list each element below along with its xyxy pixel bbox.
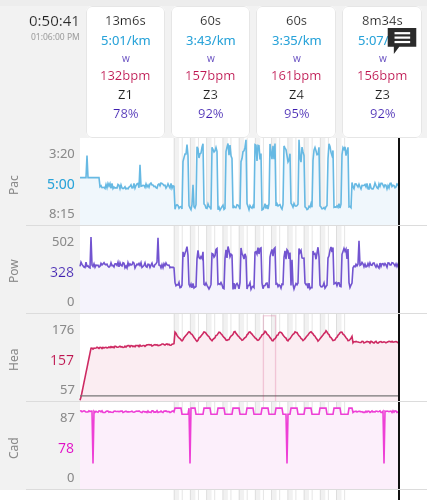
staticText: 01:06:00 PM [31, 31, 80, 43]
staticText: 5:00 [47, 174, 75, 193]
button[interactable] [80, 314, 427, 402]
staticText: Z4 [289, 85, 304, 103]
staticText: 5:01/km [101, 31, 151, 49]
staticText: 3:20 [49, 144, 75, 162]
button[interactable]: 60s [171, 6, 250, 138]
staticText: Cadence [5, 433, 21, 459]
button[interactable]: Lap notes [385, 28, 419, 54]
button[interactable] [80, 138, 427, 226]
staticText: 157 [50, 350, 75, 369]
button[interactable] [80, 402, 427, 490]
staticText: w [122, 51, 130, 65]
button[interactable] [80, 226, 427, 314]
staticText: 92% [198, 104, 224, 122]
staticText: 502 [52, 232, 75, 250]
staticText: 0 [67, 468, 75, 486]
staticText: w [293, 51, 301, 65]
staticText: 8:15 [49, 204, 75, 222]
staticText: 95% [284, 104, 310, 122]
staticText: 60s [286, 11, 308, 29]
staticText: 78% [113, 104, 139, 122]
button[interactable]: 8m34s [342, 6, 422, 138]
staticText: 57 [60, 380, 75, 398]
staticText: 156bpm [357, 66, 408, 84]
button[interactable]: 13m6s [86, 6, 165, 138]
staticText: 132bpm [100, 66, 151, 84]
staticText: Pace/km [5, 169, 21, 195]
staticText: w [379, 51, 387, 65]
staticText: 3:43/km [186, 31, 236, 49]
staticText: Z3 [375, 85, 390, 103]
staticText: 13m6s [105, 11, 146, 29]
button[interactable]: 0:50:41 [0, 6, 80, 138]
staticText: 87 [60, 408, 75, 426]
staticText: Z3 [203, 85, 218, 103]
staticText: 157bpm [185, 66, 236, 84]
staticText: Heartrate [5, 345, 21, 371]
staticText: Power [5, 257, 21, 283]
staticText: 5:07/km [358, 31, 408, 49]
staticText: 92% [370, 104, 396, 122]
button[interactable]: 60s [256, 6, 336, 138]
staticText: 328 [50, 262, 75, 281]
staticText: 8m34s [362, 11, 403, 29]
staticText: 0 [67, 292, 75, 310]
staticText: 161bpm [271, 66, 322, 84]
staticText: 0:50:41 [29, 10, 80, 30]
staticText: w [207, 51, 215, 65]
staticText: Z1 [118, 85, 133, 103]
staticText: 176 [52, 320, 75, 338]
staticText: 78 [58, 438, 75, 457]
staticText: 3:35/km [272, 31, 322, 49]
staticText: 60s [200, 11, 222, 29]
